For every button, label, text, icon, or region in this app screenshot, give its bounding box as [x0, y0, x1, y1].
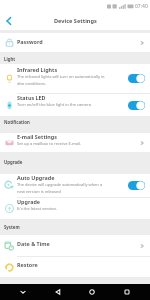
staticText: Password [17, 38, 43, 45]
staticText: Light [4, 56, 16, 62]
button[interactable]: Date & Time [0, 235, 150, 256]
staticText: System [4, 224, 20, 230]
staticText: Restore [17, 261, 38, 268]
staticText: Auto Upgrade [17, 174, 55, 181]
button[interactable]: Restore [0, 257, 150, 277]
staticText: Upgrade [4, 159, 23, 165]
staticText: Notification [4, 119, 30, 125]
button[interactable]: Hide keyboard [12, 284, 34, 300]
staticText: Infrared Lights [17, 66, 58, 73]
button[interactable]: Password [0, 33, 150, 52]
button[interactable]: E-mail Settings [0, 133, 150, 152]
button[interactable]: Recents [116, 284, 138, 300]
staticText: Upgrade [17, 198, 41, 205]
button[interactable]: Home [81, 284, 103, 300]
button[interactable]: Back [47, 284, 69, 300]
staticText: The device will upgrade automatically wh… [17, 182, 103, 194]
button[interactable]: Back [0, 12, 18, 30]
staticText: The infrared lights will turn on automat… [17, 74, 105, 86]
staticText: Status LED [17, 94, 46, 101]
staticText: Device Settings [54, 17, 97, 25]
staticText: It's the latest version. [17, 206, 58, 211]
button[interactable]: Infrared Lights [0, 64, 150, 93]
button[interactable]: Upgrade [0, 198, 150, 219]
staticText: Date & Time [17, 240, 50, 247]
button[interactable]: Auto Upgrade [0, 174, 150, 197]
staticText: Turn on/off the blue light in the camera [17, 102, 91, 107]
staticText: 07:40 [135, 3, 148, 10]
button[interactable]: Status LED [0, 94, 150, 116]
staticText: E-mail Settings [17, 133, 57, 140]
staticText: Set up a mailbox to receive E-mail. [17, 141, 82, 146]
